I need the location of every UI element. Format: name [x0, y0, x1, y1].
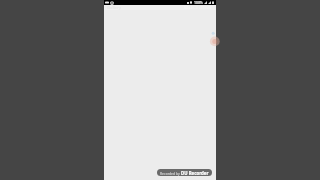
button[interactable]: Screen recorder: [209, 36, 220, 47]
staticText: Recorded by: [160, 171, 180, 176]
staticText: DU Recorder: [181, 170, 209, 176]
staticText: 100%: [194, 0, 203, 5]
